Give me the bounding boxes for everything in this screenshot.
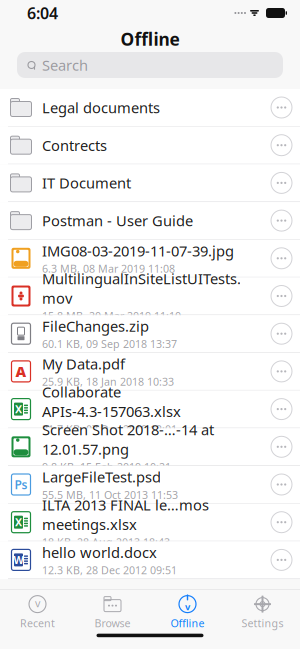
staticText: IT Document bbox=[42, 173, 131, 193]
button[interactable]: Contrects bbox=[0, 127, 300, 164]
staticText: 6:04 bbox=[27, 2, 58, 24]
button[interactable]: More actions bbox=[263, 352, 300, 390]
button[interactable]: v bbox=[0, 589, 75, 630]
staticText: ILTA 2013 FINAL le…mos meetings.xlsx bbox=[42, 495, 209, 534]
staticText: Offline bbox=[170, 616, 204, 630]
button[interactable]: X bbox=[0, 391, 300, 428]
button[interactable]: More actions bbox=[263, 88, 300, 126]
staticText: 25.9 KB, 18 Jan 2018 10:33 bbox=[42, 375, 174, 389]
staticText: v bbox=[35, 596, 40, 610]
button[interactable]: More actions bbox=[263, 541, 300, 579]
staticText: MultilingualInSiteListUITests.mov bbox=[42, 269, 241, 308]
button[interactable]: More actions bbox=[263, 202, 300, 240]
button[interactable]: W bbox=[0, 541, 300, 579]
button[interactable]: X bbox=[0, 504, 300, 541]
staticText: X bbox=[15, 515, 22, 529]
button[interactable]: Screen Shot 2018-…-14 at 12.01.57.png bbox=[0, 428, 300, 466]
staticText: My Data.pdf bbox=[42, 354, 125, 374]
button[interactable]: FileChanges.zip bbox=[0, 315, 300, 353]
staticText: IMG08-03-2019-11-07-39.jpg bbox=[42, 241, 234, 260]
button[interactable]: More actions bbox=[263, 239, 300, 277]
button[interactable]: IT Document bbox=[0, 164, 300, 202]
staticText: Recent bbox=[20, 616, 55, 630]
staticText: LargeFileTest.psd bbox=[42, 467, 161, 487]
button[interactable]: More actions bbox=[263, 465, 300, 503]
button[interactable]: v bbox=[150, 589, 225, 630]
staticText: 55.5 MB, 11 Oct 2013 11:53 bbox=[42, 488, 178, 502]
button[interactable]: More actions bbox=[263, 428, 300, 466]
staticText: Postman - User Guide bbox=[42, 211, 193, 230]
button[interactable]: More actions bbox=[263, 277, 300, 315]
staticText: v bbox=[185, 600, 190, 613]
staticText: Contrects bbox=[42, 135, 107, 155]
staticText: 9.8 KB, 15 Feb 2019 10:21 bbox=[42, 460, 171, 474]
button[interactable]: More actions bbox=[263, 503, 300, 541]
staticText: hello world.docx bbox=[42, 543, 157, 562]
staticText: Screen Shot 2018-…-14 at 12.01.57.png bbox=[42, 420, 214, 459]
button[interactable]: MultilingualInSiteListUITests.mov bbox=[0, 277, 300, 315]
staticText: 12.3 KB, 28 Dec 2012 09:51 bbox=[42, 563, 177, 577]
button[interactable]: Settings bbox=[225, 589, 300, 630]
staticText: 18 KB, 28 Aug 2013 18:43 bbox=[42, 535, 170, 549]
button[interactable]: A bbox=[0, 353, 300, 391]
staticText: Collaborate APIs-4.3-157063.xlsx bbox=[42, 382, 181, 421]
button[interactable]: More actions bbox=[263, 126, 300, 164]
button[interactable]: More actions bbox=[263, 164, 300, 202]
staticText: 15.8 MB, 20 Mar 2019 11:10 bbox=[42, 309, 181, 323]
staticText: Settings bbox=[241, 616, 283, 630]
staticText: Browse bbox=[94, 616, 130, 630]
staticText: Offline bbox=[120, 27, 179, 50]
button[interactable]: More actions bbox=[263, 315, 300, 353]
button[interactable]: More actions bbox=[263, 390, 300, 428]
staticText: Search bbox=[42, 55, 88, 75]
button[interactable]: IMG08-03-2019-11-07-39.jpg bbox=[0, 240, 300, 277]
staticText: 31.7 KB, 07 Dec 2018 12:01 bbox=[42, 422, 177, 436]
staticText: Ps bbox=[14, 476, 27, 492]
staticText: W bbox=[13, 553, 23, 567]
staticText: A bbox=[15, 362, 26, 381]
button[interactable]: Legal documents bbox=[0, 89, 300, 127]
button[interactable]: Browse bbox=[75, 589, 150, 630]
staticText: FileChanges.zip bbox=[42, 316, 149, 336]
staticText: 60.1 KB, 09 Sep 2018 13:37 bbox=[42, 337, 177, 351]
button[interactable]: Ps bbox=[0, 466, 300, 504]
button[interactable]: Postman - User Guide bbox=[0, 202, 300, 240]
staticText: Legal documents bbox=[42, 98, 160, 117]
staticText: 6.3 MB, 08 Mar 2019 11:08 bbox=[42, 261, 175, 276]
staticText: X bbox=[15, 402, 22, 416]
